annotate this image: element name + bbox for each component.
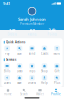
staticText: Pay <box>5 52 9 55</box>
staticText: Search <box>20 92 28 96</box>
button[interactable]: Pay <box>3 46 11 55</box>
button[interactable]: Bills <box>3 63 11 73</box>
button[interactable]: Save <box>15 75 24 85</box>
staticText: Cards <box>41 52 48 55</box>
staticText: Quick Actions <box>6 40 25 44</box>
staticText: Loans <box>4 81 11 85</box>
staticText: 2.4k <box>48 27 55 33</box>
staticText: Home <box>4 92 12 96</box>
button[interactable]: Help <box>40 75 48 85</box>
staticText: Data <box>17 69 22 73</box>
staticText: Profile <box>51 92 61 96</box>
staticText: Trips <box>29 69 35 73</box>
staticText: Premium Member <box>20 22 44 26</box>
button[interactable]: Scan <box>15 46 24 55</box>
staticText: Save <box>17 81 22 85</box>
button[interactable]: Search <box>16 88 32 96</box>
button[interactable]: Cards <box>40 46 48 55</box>
staticText: Send <box>28 52 35 55</box>
button[interactable]: Gift <box>53 63 61 73</box>
button[interactable]: Trips <box>28 63 36 73</box>
button[interactable]: Send <box>28 46 36 55</box>
staticText: Help <box>41 81 48 85</box>
staticText: Plus <box>54 81 60 85</box>
button[interactable]: Wallet <box>32 88 48 96</box>
staticText: Scan <box>17 52 22 55</box>
button[interactable]: Invest <box>28 75 36 85</box>
staticText: Rating <box>27 33 36 36</box>
button[interactable]: 4.9 <box>22 27 42 36</box>
button[interactable]: 2.4k <box>42 27 62 36</box>
staticText: Sarah Johnson <box>18 17 46 22</box>
staticText: Shop <box>41 69 48 73</box>
button[interactable]: More <box>53 46 61 55</box>
button[interactable]: 128 <box>2 27 22 36</box>
staticText: Wallet <box>36 92 44 96</box>
staticText: Services <box>6 58 16 61</box>
staticText: Points <box>47 33 56 36</box>
button[interactable]: Shop <box>40 63 48 73</box>
staticText: 4.9 <box>29 27 34 33</box>
button[interactable]: Data <box>15 63 24 73</box>
staticText: 128 <box>9 27 15 33</box>
staticText: 9:41 <box>3 1 10 6</box>
button[interactable]: Loans <box>3 75 11 85</box>
staticText: Invest <box>28 81 36 85</box>
button[interactable]: Profile <box>48 88 64 96</box>
staticText: Gift <box>54 69 59 73</box>
staticText: Bills <box>4 69 10 73</box>
staticText: More <box>53 52 60 55</box>
button[interactable]: Plus <box>53 75 61 85</box>
button[interactable]: Home <box>0 88 16 96</box>
